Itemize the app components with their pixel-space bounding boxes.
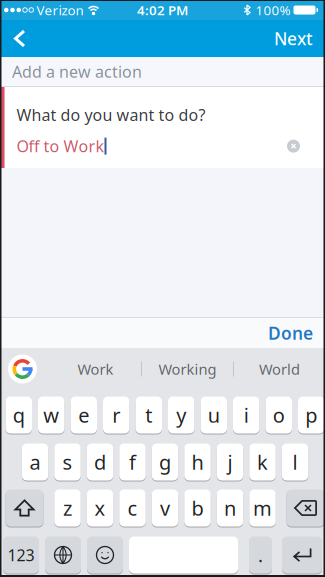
- staticText: q: [13, 402, 25, 428]
- staticText: s: [62, 449, 72, 475]
- button[interactable]: g: [152, 443, 178, 480]
- staticText: e: [78, 402, 89, 428]
- button[interactable]: Space: [129, 536, 238, 573]
- button[interactable]: f: [119, 443, 146, 480]
- button[interactable]: b: [184, 489, 211, 526]
- staticText: x: [94, 495, 105, 521]
- staticText: y: [176, 402, 186, 428]
- staticText: z: [63, 495, 72, 521]
- staticText: j: [227, 449, 232, 475]
- button[interactable]: a: [22, 443, 48, 480]
- staticText: 123: [7, 544, 34, 566]
- button[interactable]: x: [87, 489, 113, 526]
- button[interactable]: Shift: [5, 489, 43, 526]
- staticText: h: [191, 449, 203, 475]
- button[interactable]: d: [87, 443, 113, 480]
- button[interactable]: Switch keyboard: [45, 536, 81, 573]
- staticText: b: [191, 495, 203, 521]
- button[interactable]: t: [135, 396, 162, 433]
- button[interactable]: l: [282, 443, 308, 480]
- button[interactable]: e: [70, 396, 97, 433]
- staticText: n: [224, 495, 236, 521]
- button[interactable]: i: [233, 396, 259, 433]
- button[interactable]: World: [234, 359, 325, 379]
- button[interactable]: p: [298, 396, 324, 433]
- staticText: 4:02 PM: [137, 1, 188, 19]
- button[interactable]: Clear text: [287, 140, 300, 153]
- staticText: t: [145, 402, 152, 428]
- button[interactable]: n: [217, 489, 243, 526]
- button[interactable]: s: [54, 443, 81, 480]
- staticText: What do you want to do?: [16, 104, 205, 125]
- staticText: .: [258, 543, 263, 567]
- button[interactable]: Next: [274, 18, 325, 59]
- staticText: Add a new action: [12, 61, 142, 82]
- staticText: o: [273, 402, 285, 428]
- button[interactable]: Period: [249, 536, 272, 573]
- button[interactable]: y: [168, 396, 194, 433]
- button[interactable]: h: [184, 443, 211, 480]
- staticText: a: [29, 449, 40, 475]
- button[interactable]: Delete: [286, 489, 324, 526]
- staticText: Off to Work: [16, 135, 104, 157]
- button[interactable]: o: [265, 396, 292, 433]
- button[interactable]: z: [54, 489, 81, 526]
- staticText: k: [257, 449, 268, 475]
- staticText: Work: [77, 359, 113, 379]
- button[interactable]: k: [249, 443, 276, 480]
- button[interactable]: c: [119, 489, 146, 526]
- staticText: p: [305, 402, 317, 428]
- staticText: f: [129, 449, 136, 475]
- staticText: Verizon: [36, 1, 83, 19]
- staticText: Working: [158, 359, 216, 379]
- button[interactable]: Working: [142, 359, 233, 379]
- staticText: m: [253, 495, 272, 521]
- button[interactable]: m: [249, 489, 276, 526]
- staticText: c: [127, 495, 137, 521]
- staticText: l: [292, 449, 297, 475]
- staticText: i: [244, 402, 249, 428]
- button[interactable]: w: [38, 396, 64, 433]
- staticText: r: [112, 402, 120, 428]
- button[interactable]: Done: [268, 321, 325, 344]
- staticText: w: [43, 402, 59, 428]
- button[interactable]: Return: [282, 536, 322, 573]
- button[interactable]: Google search: [0, 354, 37, 383]
- staticText: Done: [268, 321, 313, 344]
- staticText: g: [159, 449, 171, 475]
- button[interactable]: Work: [50, 359, 141, 379]
- button[interactable]: v: [152, 489, 178, 526]
- staticText: Next: [274, 27, 313, 50]
- button[interactable]: r: [103, 396, 129, 433]
- button[interactable]: u: [200, 396, 227, 433]
- button[interactable]: Numbers: [3, 536, 39, 573]
- staticText: d: [94, 449, 106, 475]
- staticText: World: [259, 359, 300, 379]
- staticText: u: [208, 402, 220, 428]
- staticText: v: [160, 495, 170, 521]
- button[interactable]: q: [5, 396, 32, 433]
- button[interactable]: Emoji: [87, 536, 123, 573]
- button[interactable]: j: [217, 443, 243, 480]
- staticText: 100%: [255, 1, 290, 19]
- button[interactable]: Back: [0, 20, 26, 56]
